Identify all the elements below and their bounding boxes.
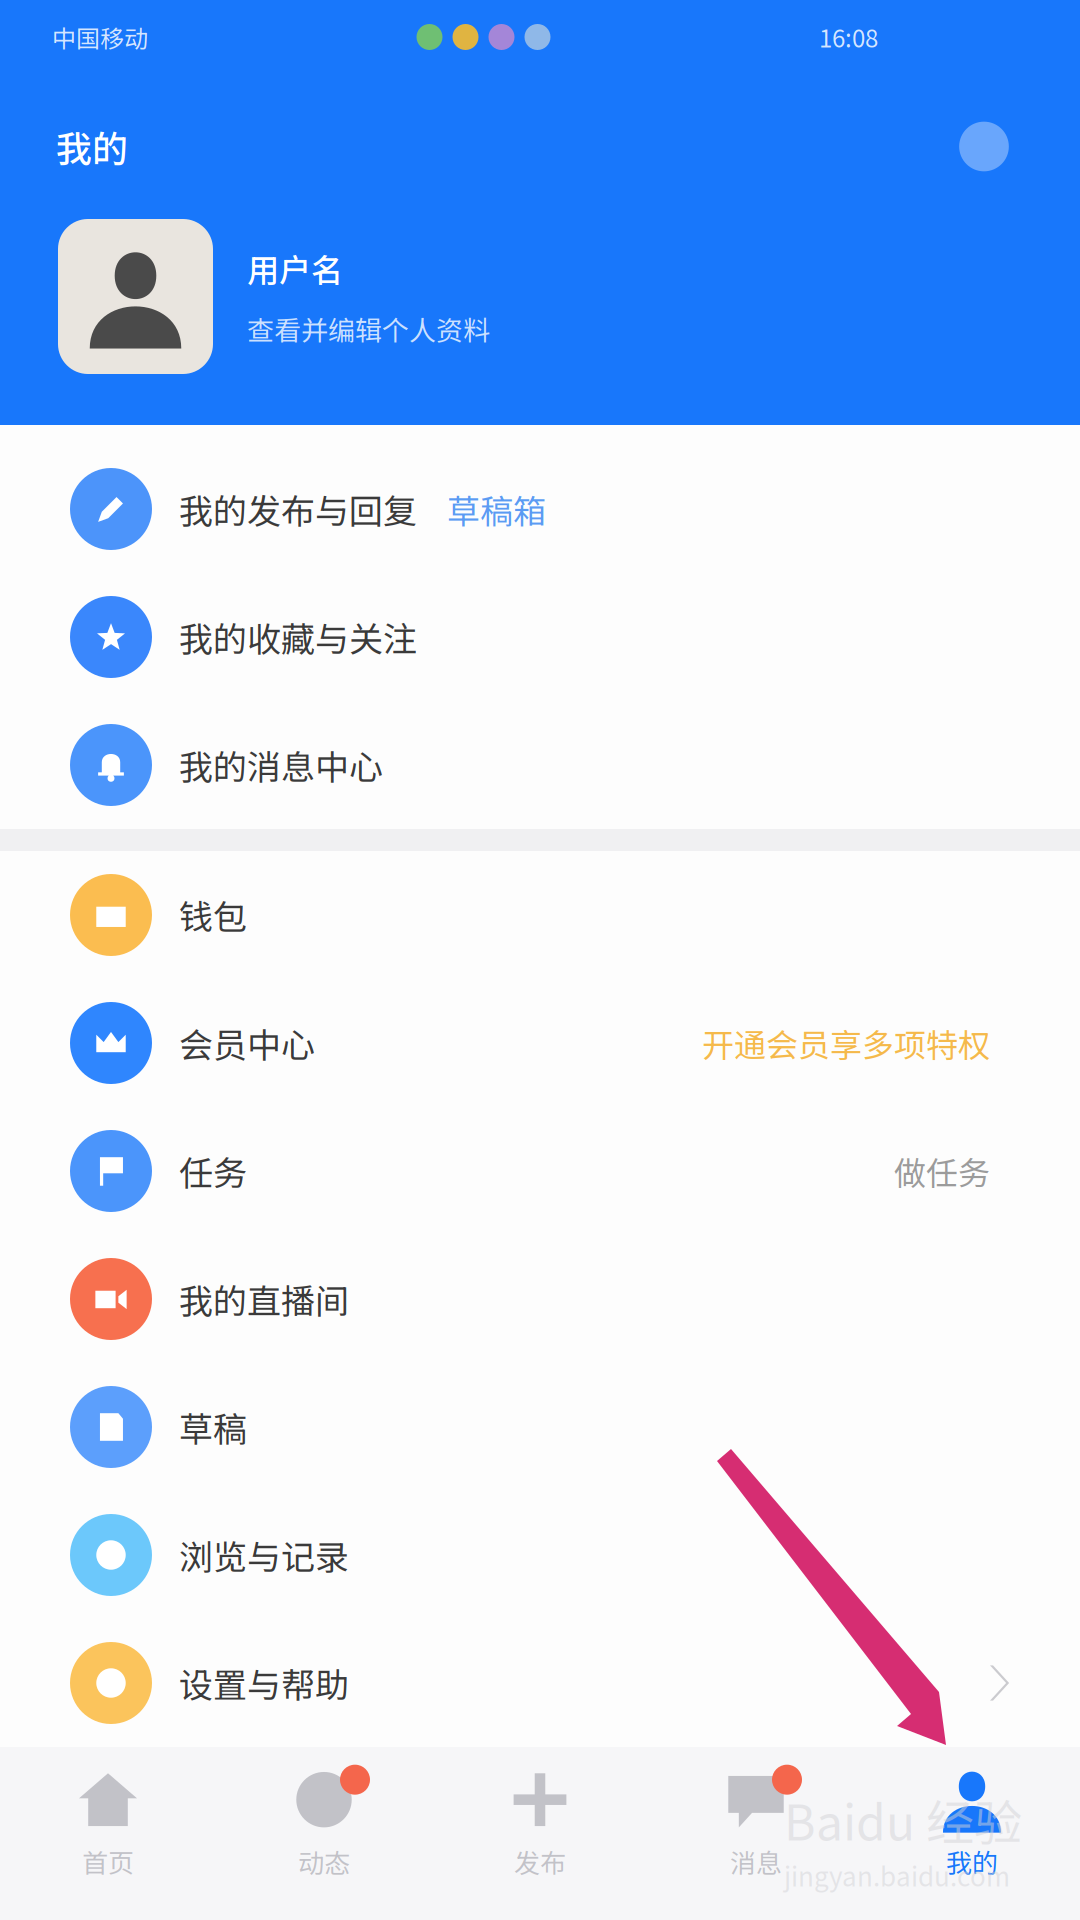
button[interactable]: 草稿 xyxy=(0,1363,1080,1491)
button[interactable]: 动态 xyxy=(216,1747,432,1920)
staticText: 我的消息中心 xyxy=(179,740,383,790)
staticText: 开通会员享多项特权 xyxy=(702,1020,990,1066)
staticText: 做任务 xyxy=(894,1148,990,1194)
button[interactable]: 钱包 xyxy=(0,851,1080,979)
button[interactable]: 用户名 xyxy=(0,219,1080,374)
staticText: 草稿箱 xyxy=(447,485,546,533)
staticText: 动态 xyxy=(298,1843,350,1880)
staticText: 查看并编辑个人资料 xyxy=(247,309,490,348)
staticText: 会员中心 xyxy=(179,1018,315,1068)
button[interactable]: 首页 xyxy=(0,1747,216,1920)
staticText: 我的收藏与关注 xyxy=(179,612,417,662)
button[interactable]: 设置与帮助 xyxy=(0,1619,1080,1747)
button[interactable]: 设置 xyxy=(944,106,1024,186)
button[interactable]: 我的收藏与关注 xyxy=(0,573,1080,701)
button[interactable]: 浏览与记录 xyxy=(0,1491,1080,1619)
button[interactable]: 我的发布与回复 xyxy=(0,445,1080,573)
staticText: 草稿 xyxy=(179,1402,247,1452)
staticText: 发布 xyxy=(514,1843,566,1880)
staticText: 设置与帮助 xyxy=(179,1658,349,1708)
staticText: Baidu 经验 xyxy=(784,1785,1022,1854)
staticText: 浏览与记录 xyxy=(179,1530,349,1580)
staticText: 任务 xyxy=(179,1146,247,1196)
staticText: 中国移动 xyxy=(52,20,148,54)
button[interactable]: 消息 xyxy=(648,1747,864,1920)
staticText: 用户名 xyxy=(247,245,343,291)
button[interactable]: 我的直播间 xyxy=(0,1235,1080,1363)
button[interactable]: 我的消息中心 xyxy=(0,701,1080,829)
staticText: 我的 xyxy=(946,1843,998,1880)
staticText: 我的直播间 xyxy=(179,1274,349,1324)
staticText: jingyan.baidu.com xyxy=(784,1856,1010,1894)
button[interactable]: 我的 xyxy=(864,1747,1080,1920)
staticText: 16:08 xyxy=(819,20,878,54)
button[interactable]: 发布 xyxy=(432,1747,648,1920)
staticText: 钱包 xyxy=(179,890,247,940)
staticText: 我的发布与回复 xyxy=(179,484,417,534)
staticText: 首页 xyxy=(82,1843,134,1880)
staticText: 我的 xyxy=(56,120,128,172)
staticText: 消息 xyxy=(730,1843,782,1880)
button[interactable]: 会员中心 xyxy=(0,979,1080,1107)
button[interactable]: 任务 xyxy=(0,1107,1080,1235)
